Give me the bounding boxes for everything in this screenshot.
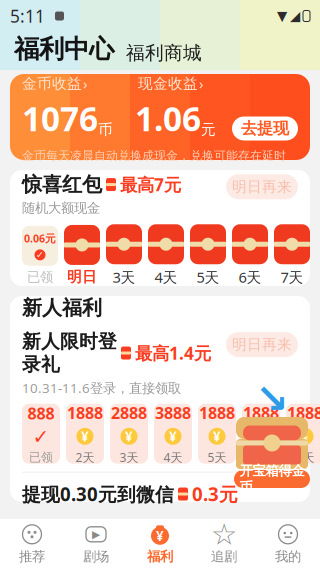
staticText: ¥ <box>301 427 309 445</box>
staticText: ¥ <box>169 427 177 445</box>
button[interactable]: 7天 <box>274 224 310 287</box>
staticText: ▼ <box>277 8 287 23</box>
staticText: 5:11 <box>10 4 45 27</box>
button[interactable]: 现金收益 <box>138 74 204 93</box>
staticText: 剧场 <box>83 548 109 565</box>
staticText: 我的 <box>275 548 301 565</box>
staticText: 元 <box>201 120 216 138</box>
button[interactable]: ▶ <box>64 519 128 569</box>
staticText: 惊喜红包 <box>22 172 102 197</box>
button[interactable]: 开宝箱得金币 <box>234 470 310 488</box>
button[interactable]: 我的 <box>256 519 320 569</box>
staticText: 888 <box>27 403 54 424</box>
staticText: 已领 <box>27 269 53 285</box>
staticText: 7天 <box>295 449 314 465</box>
staticText: ◢ <box>290 8 300 23</box>
button[interactable]: 4天 <box>148 224 184 287</box>
staticText: ✓ <box>36 250 44 260</box>
button[interactable]: 5天 <box>190 224 226 287</box>
staticText: 4天 <box>163 449 182 465</box>
staticText: ☆ <box>211 518 237 551</box>
staticText: 2888 <box>111 402 147 423</box>
staticText: 随机大额现金 <box>22 200 100 216</box>
button[interactable]: 明日 <box>64 225 100 286</box>
button[interactable]: 3天 <box>106 224 142 287</box>
staticText: 1076 <box>22 96 98 140</box>
staticText: 7天 <box>280 267 303 287</box>
button[interactable]: 金币收益 <box>22 74 88 93</box>
staticText: 明日再来 <box>232 178 292 196</box>
staticText: 现金收益 <box>138 74 198 92</box>
staticText: ¥ <box>257 427 265 445</box>
staticText: 去提现 <box>241 119 289 138</box>
button[interactable]: 2888 <box>110 404 148 464</box>
staticText: 0.3元 <box>192 482 238 506</box>
staticText: 1888 <box>199 402 235 423</box>
staticText: 福利商城 <box>126 42 202 64</box>
button[interactable]: 888 <box>22 404 60 464</box>
staticText: 明日再来 <box>232 336 292 354</box>
staticText: 币 <box>98 120 113 138</box>
staticText: 10.31-11.6登录，直接领取 <box>22 379 181 397</box>
staticText: 已领 <box>29 450 53 465</box>
button[interactable]: 明日再来 <box>226 332 298 357</box>
button[interactable]: 福利中心 <box>14 33 114 64</box>
button[interactable]: 福利商城 <box>126 42 202 64</box>
staticText: › <box>83 74 88 93</box>
button[interactable]: 1888 <box>198 404 236 464</box>
staticText: 新人福利 <box>22 295 102 320</box>
staticText: ✓ <box>32 426 49 448</box>
button[interactable]: 1888 <box>242 404 280 464</box>
staticText: 6天 <box>238 267 261 287</box>
staticText: 追剧 <box>211 548 237 565</box>
staticText: 1888 <box>67 402 103 423</box>
staticText: ▶ <box>92 528 100 540</box>
staticText: 3888 <box>155 402 191 423</box>
staticText: 1888 <box>287 402 320 423</box>
button[interactable]: 6天 <box>232 224 268 287</box>
staticText: ¥ <box>213 427 221 445</box>
staticText: › <box>199 74 204 93</box>
button[interactable]: 推荐 <box>0 519 64 569</box>
staticText: 2天 <box>75 449 94 465</box>
staticText: 推荐 <box>19 548 45 565</box>
staticText: ¥ <box>81 427 89 445</box>
button[interactable]: 明日再来 <box>226 174 298 199</box>
staticText: 提现0.30元到微信 <box>22 482 174 506</box>
staticText: 最高1.4元 <box>135 341 211 364</box>
button[interactable]: 去提现 <box>232 116 298 140</box>
staticText: 1888 <box>243 402 279 423</box>
staticText: 5天 <box>207 449 226 465</box>
staticText: 3天 <box>112 267 135 287</box>
staticText: 6天 <box>251 449 270 465</box>
staticText: 1.06 <box>135 96 201 140</box>
staticText: 新人限时登录礼 <box>22 330 117 376</box>
staticText: 0.06元 <box>24 231 56 245</box>
staticText: 明日 <box>67 268 97 286</box>
staticText: ¥ <box>156 527 164 545</box>
button[interactable]: ☆ <box>192 519 256 569</box>
staticText: 最高7元 <box>120 173 181 196</box>
staticText: ↘ <box>255 376 289 422</box>
button[interactable]: 3888 <box>154 404 192 464</box>
button[interactable]: 1888 <box>66 404 104 464</box>
staticText: 开宝箱得金币 <box>239 463 304 495</box>
staticText: 福利 <box>147 548 173 565</box>
staticText: 金币每天凌晨自动兑换成现金，兑换可能存在延时 <box>22 148 286 163</box>
staticText: ¥ <box>125 427 133 445</box>
staticText: 4天 <box>154 267 177 287</box>
button[interactable]: 0.06元 <box>22 226 58 285</box>
staticText: 5天 <box>196 267 219 287</box>
staticText: 福利中心 <box>14 33 114 64</box>
staticText: 金币收益 <box>22 74 82 92</box>
button[interactable]: 1888 <box>286 404 320 464</box>
button[interactable]: ¥ <box>128 519 192 569</box>
staticText: 3天 <box>119 449 138 465</box>
